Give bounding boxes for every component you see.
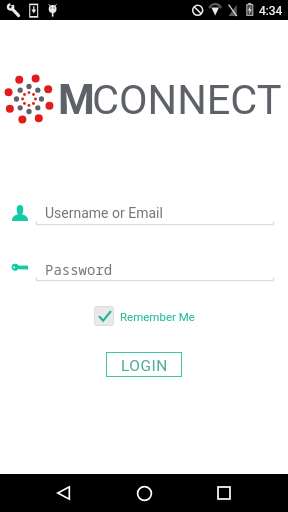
button[interactable]: Recent apps [210, 479, 238, 507]
button[interactable]: Home [130, 479, 158, 507]
staticText: 4:34 [259, 4, 283, 18]
button[interactable]: Back [50, 479, 78, 507]
staticText: CONNECT [92, 75, 282, 124]
staticText: Password [45, 260, 113, 279]
button[interactable]: LOGIN [106, 352, 182, 377]
staticText: Remember Me [120, 310, 195, 323]
staticText: LOGIN [121, 357, 168, 375]
staticText: M [58, 75, 95, 124]
button[interactable]: Remember Me [94, 306, 195, 326]
staticText: Username or Email [45, 205, 163, 221]
